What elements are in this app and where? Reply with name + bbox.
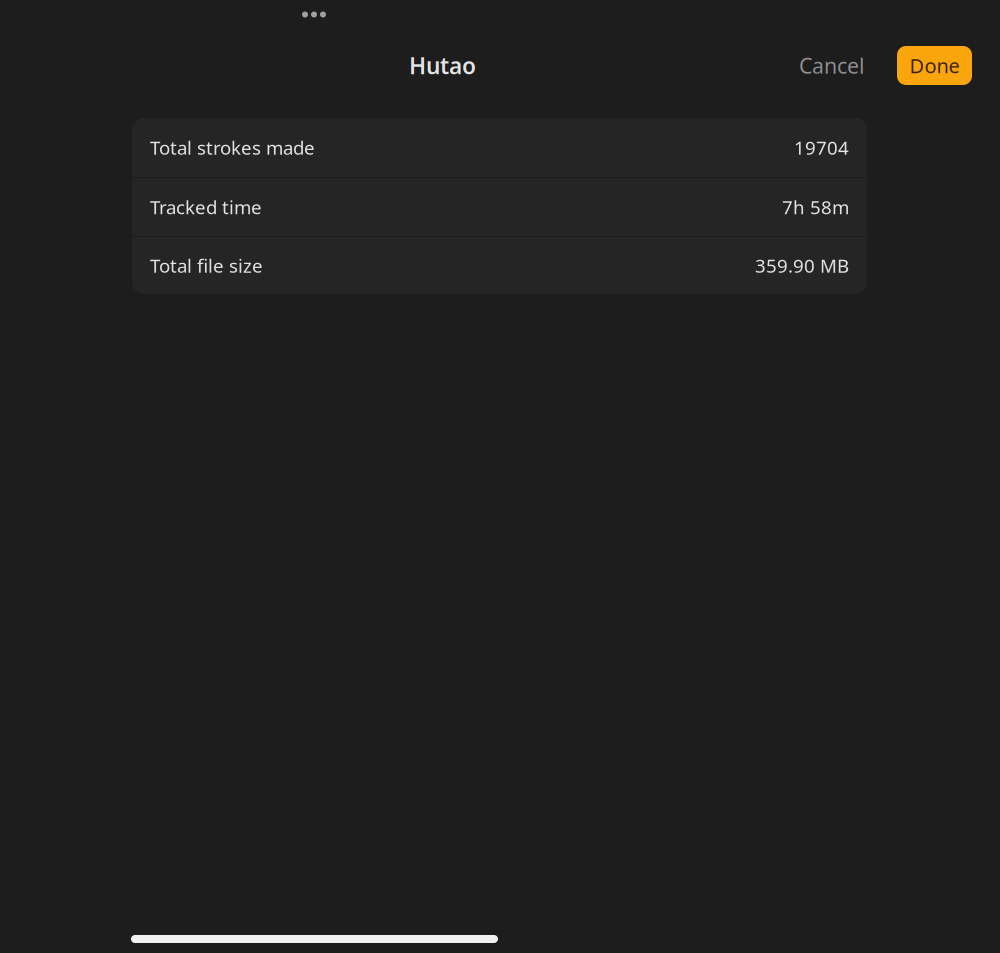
staticText: 19704 bbox=[794, 135, 849, 160]
staticText: Cancel bbox=[799, 51, 865, 80]
button[interactable]: Done bbox=[897, 46, 972, 85]
button[interactable]: Total strokes made bbox=[132, 118, 867, 177]
staticText: Total file size bbox=[150, 253, 263, 278]
staticText: 359.90 MB bbox=[755, 253, 849, 278]
staticText: Hutao bbox=[409, 50, 476, 80]
staticText: 7h 58m bbox=[782, 195, 849, 219]
staticText: Done bbox=[909, 52, 959, 79]
button[interactable]: Tracked time bbox=[132, 178, 867, 236]
staticText: Tracked time bbox=[150, 195, 262, 219]
button[interactable]: Multitasking options bbox=[302, 11, 326, 17]
button[interactable]: Total file size bbox=[132, 237, 867, 294]
staticText: Total strokes made bbox=[150, 135, 315, 160]
button[interactable]: Cancel bbox=[789, 42, 875, 89]
